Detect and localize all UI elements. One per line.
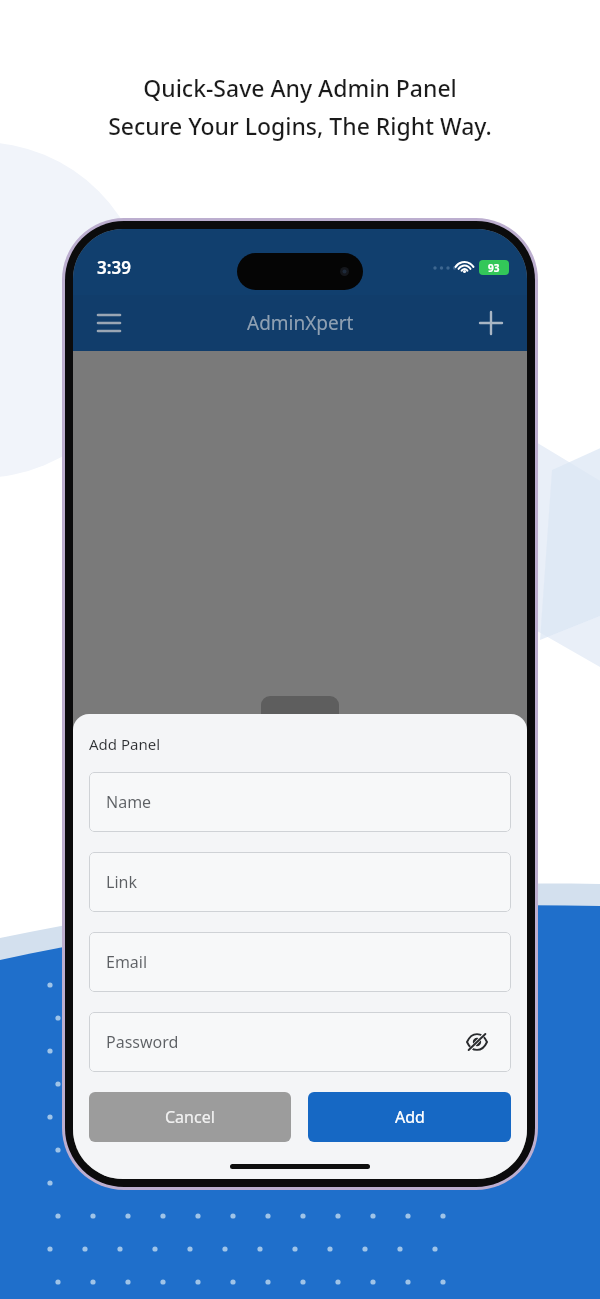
staticText: Secure Your Logins, The Right Way. bbox=[108, 110, 492, 141]
button[interactable]: Link bbox=[89, 852, 511, 912]
staticText: Email bbox=[106, 951, 148, 973]
button[interactable]: Toggle password visibility bbox=[460, 1025, 494, 1059]
button[interactable]: Password bbox=[89, 1012, 511, 1072]
staticText: Quick-Save Any Admin Panel bbox=[143, 72, 457, 103]
staticText: 93 bbox=[488, 261, 500, 275]
staticText: Cancel bbox=[165, 1106, 215, 1128]
button[interactable]: Name bbox=[89, 772, 511, 832]
staticText: 3:39 bbox=[97, 256, 131, 279]
staticText: Add bbox=[395, 1106, 425, 1128]
button[interactable]: Menu bbox=[87, 301, 131, 345]
staticText: Password bbox=[106, 1031, 179, 1053]
button[interactable]: Email bbox=[89, 932, 511, 992]
staticText: AdminXpert bbox=[247, 310, 354, 336]
staticText: Link bbox=[106, 871, 137, 893]
staticText: Add Panel bbox=[89, 734, 161, 754]
button[interactable]: Add bbox=[469, 301, 513, 345]
staticText: Name bbox=[106, 791, 152, 813]
button[interactable]: Add bbox=[308, 1092, 511, 1142]
button[interactable]: Cancel bbox=[89, 1092, 291, 1142]
